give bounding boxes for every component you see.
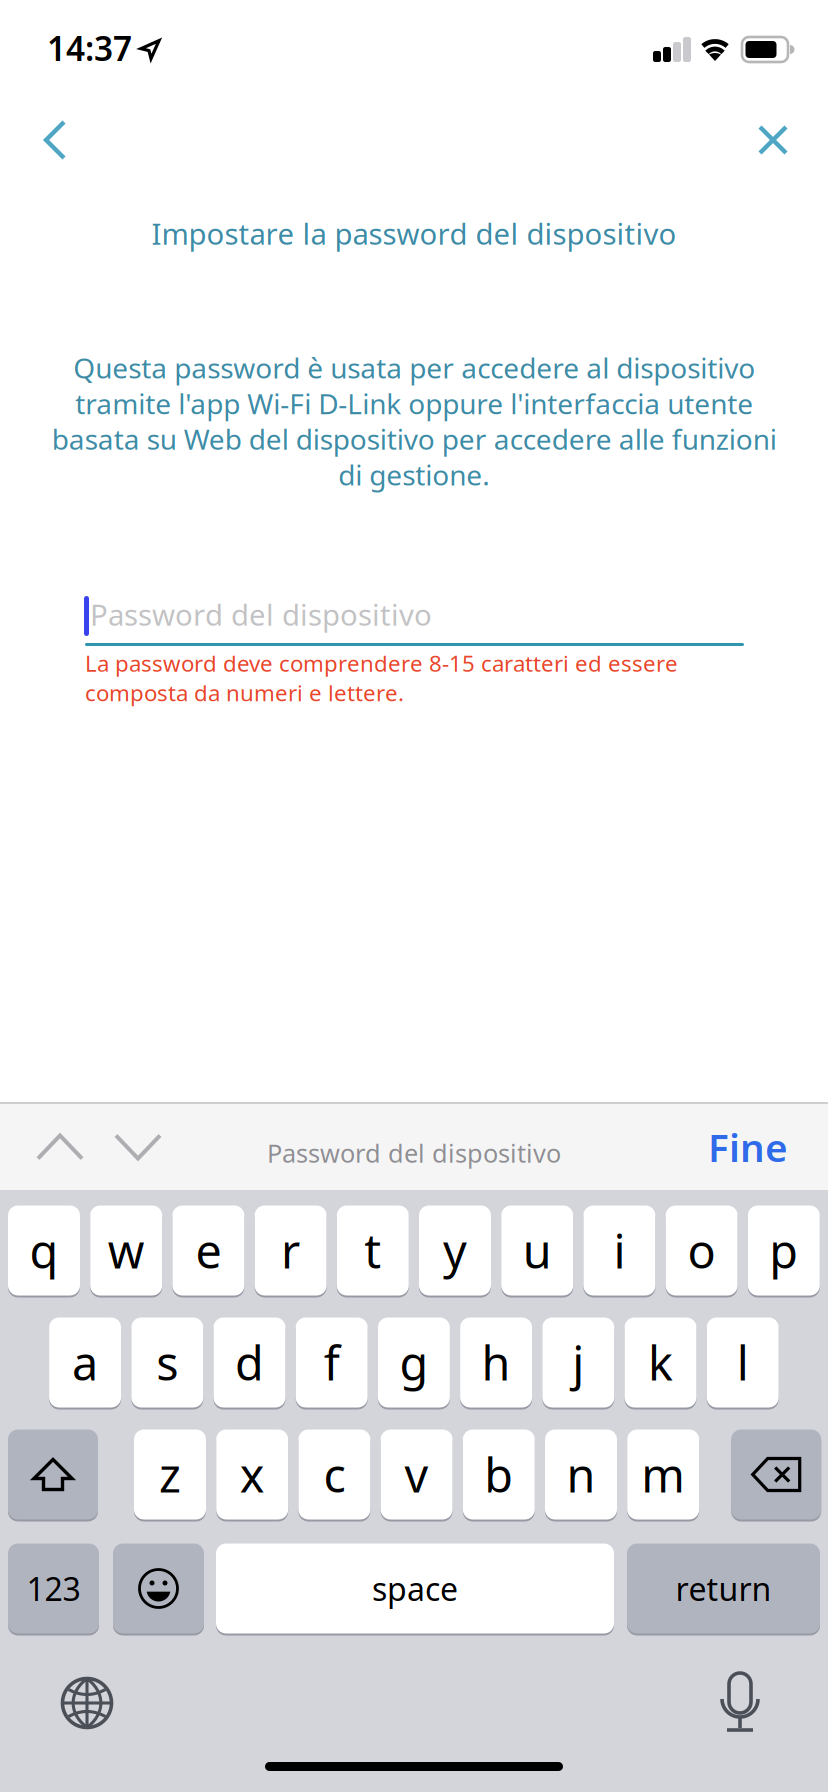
staticText: i [613, 1219, 625, 1281]
button[interactable]: d [213, 1316, 285, 1409]
staticText: u [523, 1219, 552, 1281]
button[interactable]: Back [10, 98, 100, 182]
button[interactable]: u [501, 1204, 573, 1297]
staticText: c [323, 1443, 345, 1505]
button[interactable]: h [460, 1316, 532, 1409]
button[interactable] [731, 1428, 821, 1521]
button[interactable]: 123 [8, 1542, 99, 1635]
button[interactable]: y [419, 1204, 491, 1297]
button[interactable]: t [337, 1204, 409, 1297]
button[interactable]: m [627, 1428, 699, 1521]
staticText: p [769, 1219, 798, 1281]
staticText: Password del dispositivo [267, 1136, 561, 1170]
button[interactable]: i [583, 1204, 655, 1297]
button[interactable]: x [216, 1428, 288, 1521]
button[interactable]: a [49, 1316, 121, 1409]
button[interactable]: space [216, 1542, 614, 1635]
button[interactable]: b [463, 1428, 535, 1521]
staticText: d [235, 1331, 264, 1393]
staticText: k [648, 1331, 673, 1393]
button[interactable]: l [707, 1316, 779, 1409]
staticText: j [572, 1331, 584, 1393]
button[interactable]: q [8, 1204, 80, 1297]
button[interactable]: v [381, 1428, 453, 1521]
staticText: m [641, 1443, 685, 1505]
staticText: return [675, 1567, 771, 1610]
staticText: Questa password è usata per accedere al … [51, 349, 776, 493]
button[interactable]: k [624, 1316, 696, 1409]
staticText: e [195, 1219, 221, 1281]
staticText: w [108, 1219, 145, 1281]
staticText: s [156, 1331, 178, 1393]
button[interactable]: Close [731, 98, 815, 182]
button[interactable]: Fine [668, 1104, 788, 1190]
button[interactable]: Change keyboard [42, 1658, 132, 1748]
staticText: b [484, 1443, 513, 1505]
button[interactable]: f [296, 1316, 368, 1409]
button[interactable]: c [298, 1428, 370, 1521]
button[interactable]: Dictation [695, 1658, 785, 1748]
staticText: Impostare la password del dispositivo [151, 214, 676, 253]
staticText: x [240, 1443, 265, 1505]
staticText: z [159, 1443, 181, 1505]
staticText: r [281, 1219, 300, 1281]
button[interactable]: w [90, 1204, 162, 1297]
staticText: Fine [708, 1121, 788, 1173]
staticText: 123 [26, 1567, 80, 1610]
staticText: y [443, 1219, 467, 1281]
staticText: h [482, 1331, 511, 1393]
staticText: o [688, 1219, 716, 1281]
button[interactable]: n [545, 1428, 617, 1521]
button[interactable] [8, 1428, 98, 1521]
staticText: l [737, 1331, 749, 1393]
button[interactable]: g [378, 1316, 450, 1409]
button[interactable]: Next field [94, 1104, 182, 1190]
button[interactable]: j [542, 1316, 614, 1409]
staticText: f [324, 1331, 340, 1393]
staticText: Password del dispositivo [90, 595, 432, 634]
staticText: a [72, 1331, 98, 1393]
button[interactable]: r [255, 1204, 327, 1297]
staticText: La password deve comprendere 8-15 caratt… [85, 648, 678, 708]
staticText: space [372, 1567, 458, 1610]
staticText: g [399, 1331, 428, 1393]
staticText: v [405, 1443, 429, 1505]
staticText: t [364, 1219, 381, 1281]
button[interactable]: z [134, 1428, 206, 1521]
button[interactable] [113, 1542, 204, 1635]
staticText: q [29, 1219, 58, 1281]
button[interactable]: p [748, 1204, 820, 1297]
button[interactable]: Previous field [16, 1104, 104, 1190]
staticText: n [566, 1443, 595, 1505]
button[interactable]: o [666, 1204, 738, 1297]
staticText: 14:37 [47, 26, 132, 70]
button[interactable]: s [131, 1316, 203, 1409]
button[interactable]: e [172, 1204, 244, 1297]
button[interactable]: return [627, 1542, 820, 1635]
